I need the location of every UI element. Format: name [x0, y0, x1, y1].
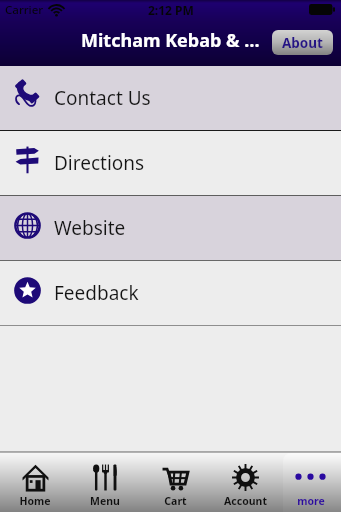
staticText: Feedback — [54, 280, 139, 306]
button[interactable]: Contact Us — [0, 66, 341, 130]
button[interactable]: Directions — [0, 131, 341, 195]
staticText: Contact Us — [54, 85, 151, 111]
staticText: Website — [54, 215, 126, 241]
staticText: more — [297, 494, 325, 508]
staticText: Home — [19, 494, 51, 508]
button[interactable]: Cart — [140, 453, 210, 512]
button[interactable]: Menu — [70, 453, 140, 512]
staticText: Account — [224, 494, 267, 508]
button[interactable]: Website — [0, 196, 341, 260]
staticText: 2:12 PM — [148, 2, 194, 18]
button[interactable]: Account — [210, 453, 280, 512]
button[interactable]: more — [280, 453, 341, 512]
staticText: Menu — [90, 494, 120, 508]
staticText: Mitcham Kebab & … — [81, 28, 260, 53]
staticText: Directions — [54, 150, 145, 176]
staticText: About — [282, 34, 323, 52]
button[interactable]: Feedback — [0, 261, 341, 325]
button[interactable]: Home — [0, 453, 70, 512]
staticText: Carrier — [5, 2, 44, 18]
staticText: Cart — [164, 494, 187, 508]
button[interactable]: About — [272, 30, 333, 55]
